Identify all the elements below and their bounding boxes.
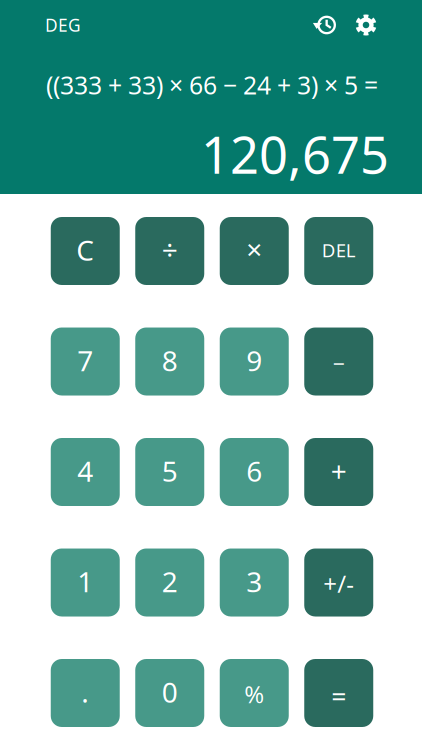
staticText: 9 [246, 342, 262, 379]
staticText: 6 [246, 452, 262, 490]
button[interactable]: History [313, 12, 337, 38]
button[interactable]: − [304, 327, 373, 395]
staticText: 8 [162, 342, 178, 379]
button[interactable]: 6 [220, 438, 289, 506]
button[interactable]: DEG [45, 12, 81, 38]
staticText: 4 [77, 452, 93, 490]
button[interactable]: Settings [353, 12, 379, 38]
staticText: 0 [162, 673, 178, 711]
button[interactable]: 9 [220, 327, 289, 395]
staticText: = [331, 678, 346, 714]
button[interactable]: 2 [135, 548, 204, 616]
staticText: 7 [77, 342, 93, 379]
staticText: ((333 + 33) × 66 − 24 + 3) × 5 = [46, 68, 378, 102]
staticText: . [81, 673, 89, 711]
staticText: + [331, 452, 347, 490]
button[interactable]: % [220, 659, 289, 727]
staticText: − [333, 349, 345, 378]
staticText: DEL [322, 238, 356, 262]
button[interactable]: + [304, 438, 373, 506]
button[interactable]: 7 [51, 327, 120, 395]
button[interactable]: C [51, 217, 120, 285]
button[interactable]: 8 [135, 327, 204, 395]
button[interactable]: 3 [220, 548, 289, 616]
button[interactable]: . [51, 659, 120, 727]
staticText: +/- [323, 568, 354, 599]
staticText: 5 [162, 452, 178, 490]
staticText: 120,675 [201, 120, 389, 188]
button[interactable]: = [304, 659, 373, 727]
button[interactable]: DEL [304, 217, 373, 285]
button[interactable]: ÷ [135, 217, 204, 285]
button[interactable]: 1 [51, 548, 120, 616]
staticText: × [246, 230, 262, 268]
staticText: 2 [162, 563, 178, 600]
button[interactable]: 4 [51, 438, 120, 506]
button[interactable]: 5 [135, 438, 204, 506]
staticText: 1 [77, 563, 93, 600]
button[interactable]: 0 [135, 659, 204, 727]
staticText: C [76, 231, 94, 269]
staticText: % [244, 678, 264, 710]
button[interactable]: × [220, 217, 289, 285]
button[interactable]: +/- [304, 548, 373, 616]
staticText: ÷ [162, 230, 178, 268]
staticText: DEG [45, 13, 81, 36]
staticText: 3 [246, 563, 262, 600]
